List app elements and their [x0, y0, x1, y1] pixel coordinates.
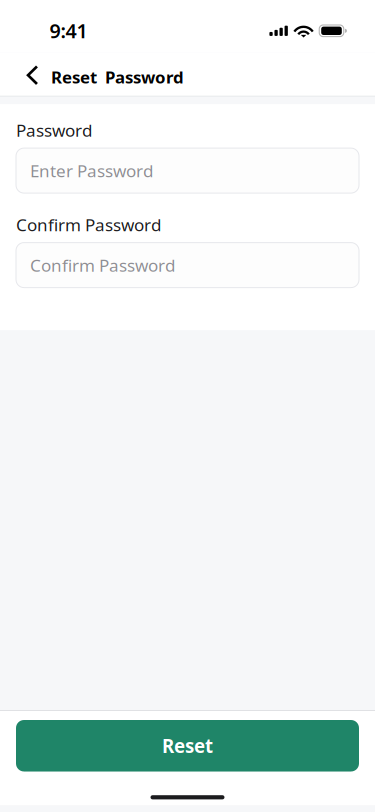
staticText: Password [16, 118, 92, 142]
staticText: Enter Password [30, 159, 153, 182]
staticText: Reset Password [51, 66, 184, 88]
button[interactable]: Reset Password [51, 55, 184, 99]
button[interactable]: Confirm Password [16, 243, 359, 288]
staticText: Reset [162, 733, 213, 758]
button[interactable]: Back [15, 53, 49, 97]
button[interactable]: Enter Password [16, 148, 359, 193]
staticText: 9:41 [50, 17, 88, 44]
staticText: Confirm Password [16, 213, 161, 236]
button[interactable]: Reset [16, 720, 359, 771]
staticText: Confirm Password [30, 253, 175, 277]
